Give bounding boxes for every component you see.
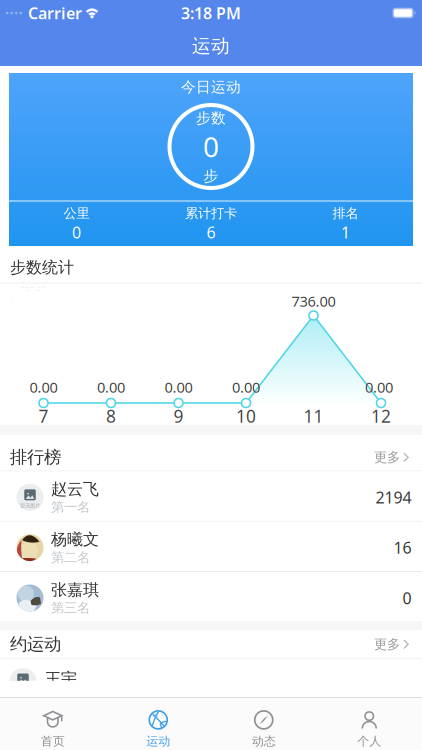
staticText: 更多 [374,636,400,652]
staticText: 首页 [41,734,65,749]
staticText: 12 [371,404,391,427]
staticText: 1 [341,222,350,243]
staticText: 公里 [63,205,89,222]
staticText: 第二名 [51,549,90,566]
staticText: 步 [203,167,218,185]
staticText: 杨曦文 [51,530,99,549]
staticText: 排行榜 [10,447,61,468]
staticText: 运动 [146,734,170,749]
staticText: 更多 [374,449,400,465]
staticText: 张嘉琪 [51,580,99,600]
staticText: 2194 [375,487,411,508]
staticText: 10 [236,404,256,427]
staticText: 第三名 [51,600,90,616]
staticText: 0 [203,128,219,165]
staticText: 11 [303,404,323,427]
staticText: 736.00 [291,291,335,311]
staticText: 6 [206,222,215,243]
staticText: 7 [38,404,48,427]
button[interactable]: 个人 [316,698,422,750]
staticText: 今日运动 [181,78,241,96]
staticText: 0.00 [164,377,192,397]
staticText: 3:18 PM [181,2,241,24]
staticText: 约运动 [10,634,61,655]
button[interactable]: 运动 [105,698,211,750]
staticText: 0.00 [29,377,57,397]
staticText: 0 [72,222,81,243]
button[interactable]: 更多 [374,636,409,652]
staticText: 王宇 [45,669,77,689]
staticText: 8 [106,404,116,427]
button[interactable]: 首页 [0,698,105,750]
button[interactable]: 更多 [374,449,409,465]
staticText: 运动 [192,34,230,57]
staticText: 累计打卡 [185,205,237,222]
button[interactable]: 暂无图片 [0,471,422,522]
staticText: 0.00 [97,377,125,397]
staticText: 0.00 [365,377,393,397]
button[interactable]: 动态 [211,698,316,750]
staticText: 个人 [357,734,381,749]
staticText: ¨˙˙·˙¨·˙·¨ [20,286,45,296]
button[interactable]: 张嘉琪 [0,572,422,622]
staticText: 步数统计 [10,258,74,277]
staticText: 0.00 [232,377,260,397]
staticText: Carrier [28,2,82,24]
staticText: 16 [393,537,411,558]
staticText: 暂无图片 [20,502,40,509]
staticText: 9 [173,404,183,427]
staticText: 赵云飞 [51,479,99,499]
staticText: 第一名 [51,499,90,515]
staticText: 0 [402,587,411,609]
staticText: 动态 [252,734,276,749]
button[interactable]: 杨曦文 [0,522,422,572]
staticText: 步数 [196,109,226,127]
staticText: 排名 [333,205,359,222]
